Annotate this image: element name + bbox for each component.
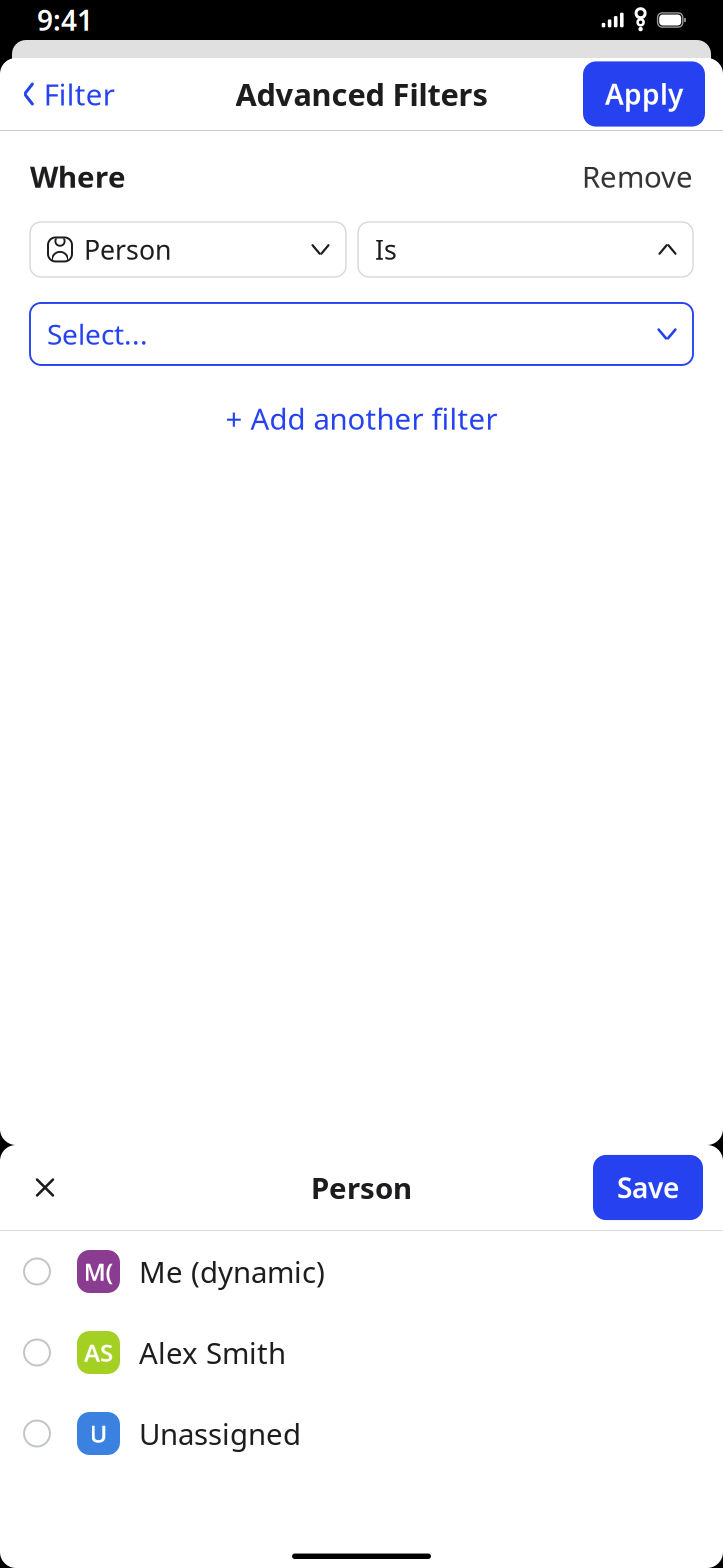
staticText: Select...	[47, 315, 148, 353]
staticText: Unassigned	[139, 1414, 301, 1453]
staticText: Apply	[605, 75, 683, 113]
button[interactable]: Apply	[583, 61, 705, 127]
staticText: 9:41	[37, 1, 93, 39]
staticText: Me (dynamic)	[139, 1252, 325, 1291]
button[interactable]: Close	[20, 1162, 70, 1212]
button[interactable]: Filter	[18, 64, 119, 123]
button[interactable]: AS	[0, 1312, 723, 1393]
button[interactable]: Save	[593, 1155, 703, 1220]
staticText: AS	[84, 1337, 113, 1368]
staticText: Save	[617, 1169, 679, 1206]
staticText: Where	[30, 157, 126, 196]
button[interactable]: Select...	[30, 303, 693, 365]
button[interactable]: Is	[358, 222, 693, 277]
staticText: Advanced Filters	[235, 74, 487, 114]
button[interactable]: U	[0, 1393, 723, 1474]
staticText: Remove	[582, 157, 693, 196]
button[interactable]: M(	[0, 1231, 723, 1312]
staticText: Person	[84, 232, 171, 267]
staticText: Is	[375, 232, 397, 267]
staticText: + Add another filter	[225, 399, 497, 438]
staticText: Person	[311, 1168, 412, 1207]
staticText: Filter	[44, 74, 115, 113]
staticText: M(	[83, 1256, 113, 1287]
button[interactable]: + Add another filter	[225, 391, 497, 446]
staticText: Alex Smith	[139, 1333, 286, 1372]
staticText: U	[89, 1418, 107, 1449]
button[interactable]: Remove	[582, 157, 693, 196]
button[interactable]: Person	[30, 222, 346, 277]
